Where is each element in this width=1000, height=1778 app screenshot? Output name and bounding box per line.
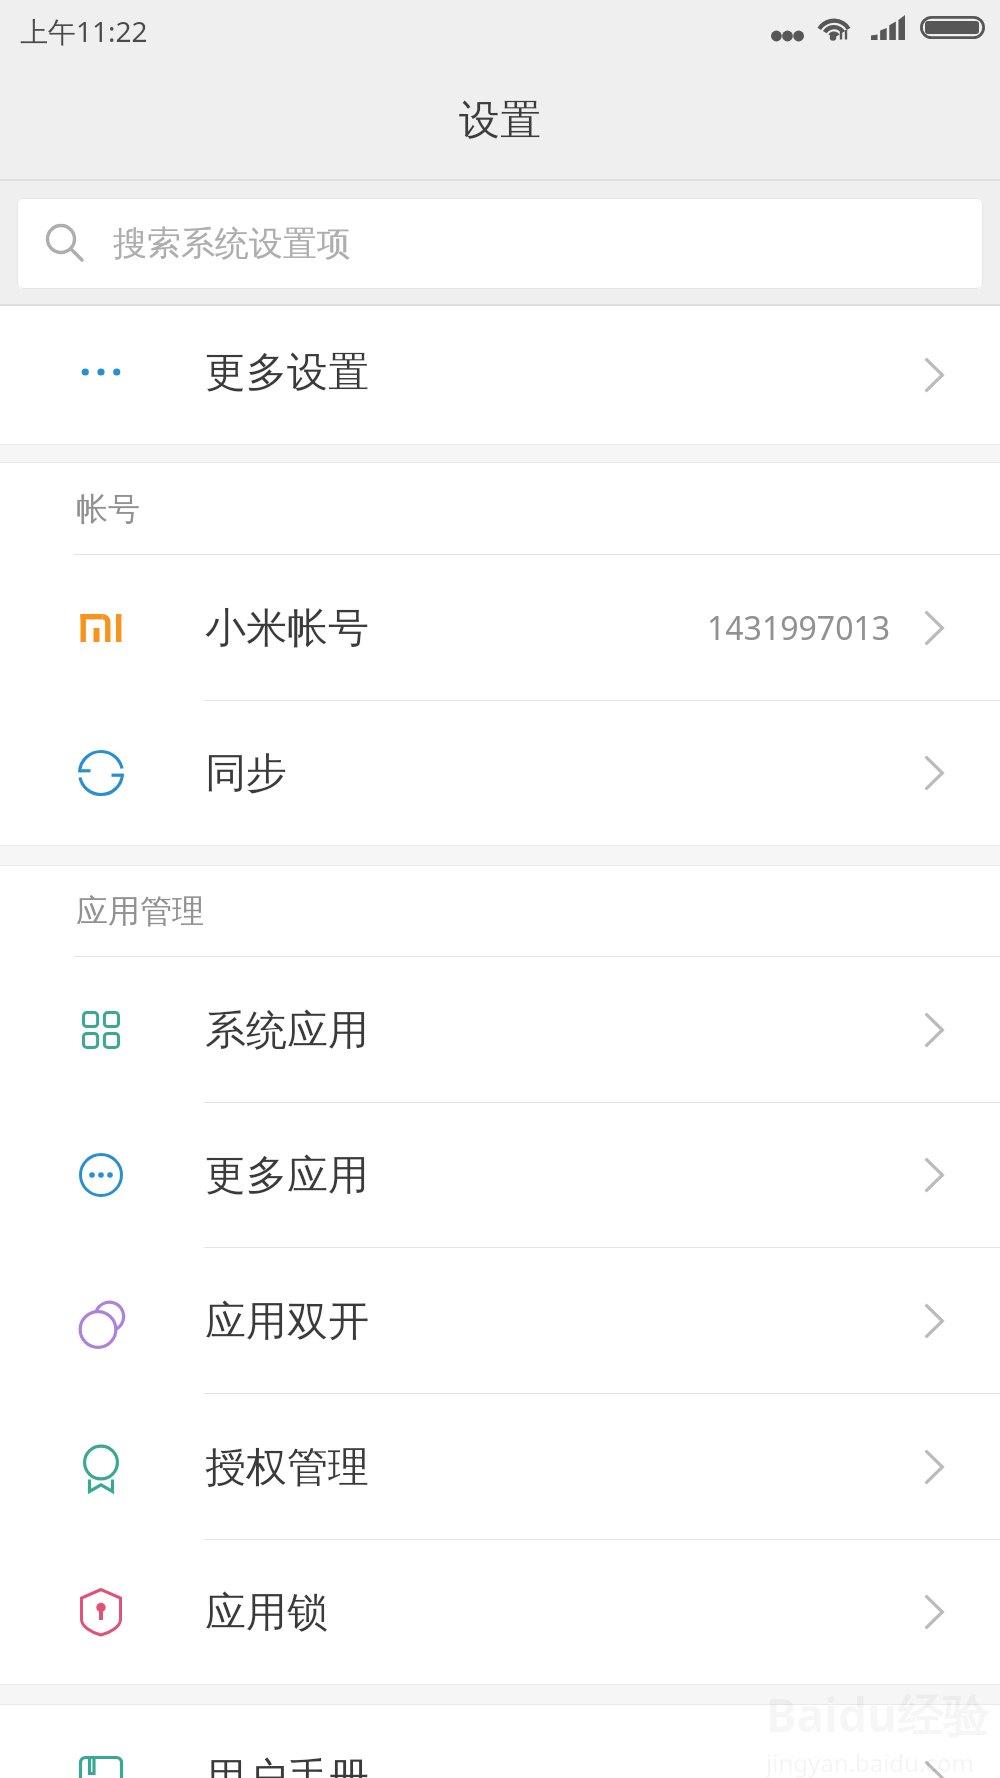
other: Open — [924, 755, 944, 791]
staticText: 授权管理 — [205, 1442, 369, 1494]
other: Open — [924, 1760, 944, 1778]
other: Open — [924, 1157, 944, 1193]
other: Open — [924, 1303, 944, 1339]
button[interactable]: 更多设置 — [0, 306, 1000, 444]
staticText: 更多设置 — [205, 347, 369, 399]
staticText: jingyan.baidu.com — [766, 1746, 974, 1778]
staticText: 用户手册 — [205, 1753, 369, 1778]
button[interactable]: 授权管理 — [0, 1394, 1000, 1539]
staticText: 搜索系统设置项 — [113, 222, 351, 265]
staticText: 帐号 — [76, 489, 140, 529]
button[interactable]: 用户手册 — [0, 1705, 1000, 1778]
staticText: 上午11:22 — [20, 12, 148, 50]
staticText: 应用双开 — [205, 1296, 369, 1348]
other: Search — [43, 222, 87, 266]
button[interactable]: 应用双开 — [0, 1248, 1000, 1393]
staticText: 1431997013 — [707, 606, 891, 650]
button[interactable]: 同步 — [0, 701, 1000, 845]
staticText: Baidu经验 — [766, 1683, 989, 1746]
other: Open — [924, 610, 944, 646]
staticText: 应用管理 — [76, 891, 204, 931]
staticText: 同步 — [205, 748, 287, 800]
other: Open — [924, 357, 944, 393]
button[interactable]: 小米帐号 — [0, 555, 1000, 700]
button[interactable]: 应用锁 — [0, 1540, 1000, 1684]
other: Open — [924, 1594, 944, 1630]
other: Open — [924, 1012, 944, 1048]
button[interactable]: 更多应用 — [0, 1103, 1000, 1247]
staticText: 应用锁 — [205, 1587, 328, 1639]
other: Open — [924, 1449, 944, 1485]
button[interactable]: Search — [17, 198, 983, 289]
button[interactable]: 系统应用 — [0, 957, 1000, 1102]
staticText: 系统应用 — [205, 1005, 369, 1057]
staticText: 更多应用 — [205, 1150, 369, 1202]
staticText: 小米帐号 — [205, 603, 369, 655]
staticText: 设置 — [459, 95, 541, 147]
